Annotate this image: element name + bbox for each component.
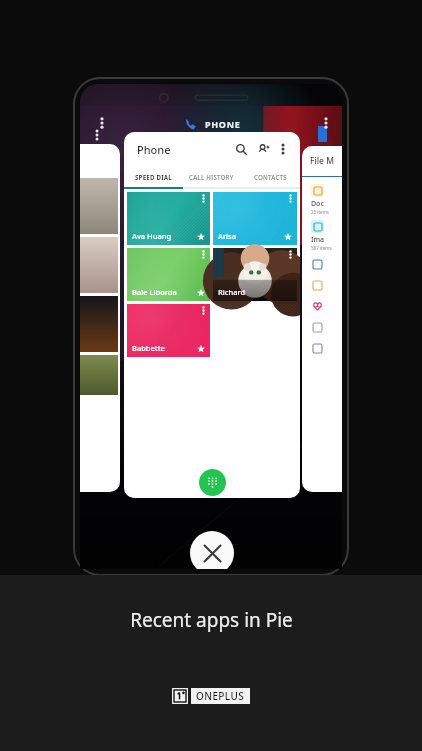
staticText: 587 items: [311, 245, 332, 251]
button[interactable]: Ava Huang: [127, 192, 210, 245]
button[interactable]: More options: [275, 141, 291, 157]
button[interactable]: Search: [232, 140, 250, 158]
button[interactable]: Babbette: [127, 304, 210, 357]
staticText: Ava Huang: [132, 231, 172, 241]
staticText: File M: [310, 155, 334, 167]
button[interactable]: [80, 144, 120, 492]
button[interactable]: Phone: [124, 132, 300, 498]
staticText: Babbette: [132, 343, 165, 353]
staticText: PHONE: [205, 118, 241, 130]
staticText: ONEPLUS: [196, 689, 245, 703]
staticText: SPEED DIAL: [135, 173, 172, 181]
button[interactable]: Richard: [213, 248, 297, 301]
staticText: Richard: [218, 287, 246, 297]
staticText: Recent apps in Pie: [130, 607, 293, 633]
staticText: 23 items: [311, 209, 330, 215]
staticText: Phone: [137, 142, 171, 157]
button[interactable]: File Manager: [318, 126, 327, 142]
staticText: Ima: [311, 235, 325, 245]
button[interactable]: Bale Liborda: [127, 248, 210, 301]
button[interactable]: Clear all recent apps: [190, 531, 234, 569]
button[interactable]: CONTACTS: [241, 166, 300, 187]
button[interactable]: File M: [302, 146, 342, 492]
button[interactable]: Add contact: [254, 140, 272, 158]
staticText: CALL HISTORY: [189, 173, 234, 181]
staticText: Arisa: [218, 231, 237, 241]
button[interactable]: SPEED DIAL: [124, 166, 182, 187]
button[interactable]: CALL HISTORY: [182, 166, 241, 187]
staticText: CONTACTS: [254, 173, 287, 181]
button[interactable]: More options: [90, 128, 104, 142]
button[interactable]: More options: [94, 115, 110, 131]
button[interactable]: More options: [318, 115, 334, 131]
staticText: Doc: [311, 199, 324, 209]
button[interactable]: Arisa: [213, 192, 297, 245]
staticText: Bale Liborda: [132, 287, 177, 297]
button[interactable]: Dialpad: [199, 469, 226, 496]
